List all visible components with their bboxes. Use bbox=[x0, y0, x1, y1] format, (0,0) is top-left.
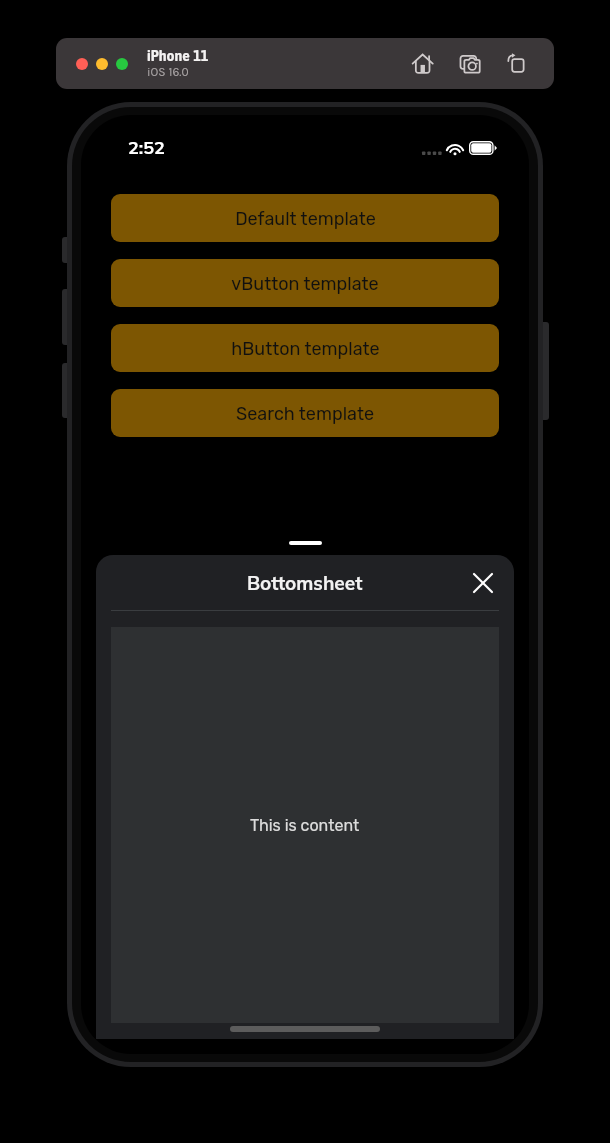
staticText: This is content bbox=[250, 816, 360, 835]
staticText: hButton template bbox=[231, 338, 380, 359]
staticText: Default template bbox=[235, 208, 376, 229]
button[interactable]: Close bbox=[468, 568, 498, 598]
button[interactable]: Minimise window bbox=[96, 58, 108, 70]
staticText: vButton template bbox=[231, 273, 379, 294]
button[interactable]: Close window bbox=[76, 58, 88, 70]
staticText: Bottomsheet bbox=[247, 571, 363, 595]
button[interactable]: Default template bbox=[111, 194, 499, 242]
staticText: 2:52 bbox=[128, 136, 165, 159]
staticText: iPhone 11 bbox=[147, 48, 209, 64]
button[interactable]: Search template bbox=[111, 389, 499, 437]
button[interactable]: Maximise window bbox=[116, 58, 128, 70]
button[interactable]: hButton template bbox=[111, 324, 499, 372]
button[interactable]: Rotate bbox=[500, 47, 534, 81]
button[interactable]: vButton template bbox=[111, 259, 499, 307]
staticText: iOS 16.0 bbox=[147, 65, 189, 79]
button[interactable]: Screenshot bbox=[454, 47, 488, 81]
button[interactable]: Home bbox=[406, 47, 440, 81]
staticText: Search template bbox=[236, 403, 374, 424]
